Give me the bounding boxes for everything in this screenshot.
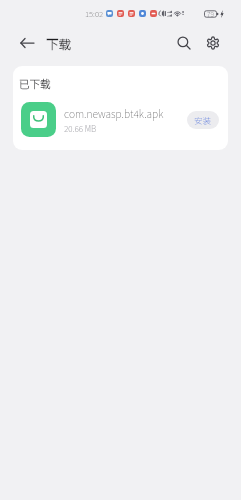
staticText: 已下载 xyxy=(19,76,51,91)
button[interactable]: Back xyxy=(11,27,43,58)
staticText: 15:02 xyxy=(85,8,104,19)
staticText: 79 xyxy=(207,9,214,18)
button[interactable]: 安装 xyxy=(187,111,219,129)
staticText: 安装 xyxy=(194,114,212,126)
button[interactable]: com.newasp.bt4k.apk xyxy=(13,91,228,150)
button[interactable]: Settings xyxy=(198,28,227,57)
staticText: com.newasp.bt4k.apk xyxy=(64,106,164,121)
button[interactable]: Search xyxy=(169,28,198,57)
staticText: 20.66 MB xyxy=(64,122,97,134)
staticText: 下载 xyxy=(46,34,72,52)
